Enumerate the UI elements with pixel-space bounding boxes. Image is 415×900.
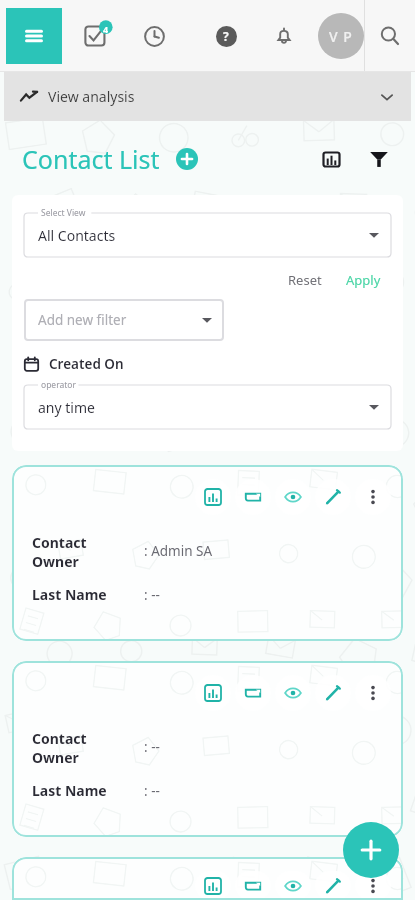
staticText: Contact List [22, 142, 160, 176]
button[interactable]: Filter [359, 139, 399, 179]
button[interactable]: Recent [132, 14, 176, 58]
staticText: Reset [288, 271, 322, 289]
staticText: : -- [144, 782, 160, 800]
button[interactable]: Add [172, 144, 202, 174]
button[interactable]: Search [365, 0, 415, 72]
staticText: : Admin SA [144, 542, 213, 560]
button[interactable]: Analytics [12, 661, 403, 837]
button[interactable]: Chart view [311, 139, 351, 179]
button[interactable]: Notes [235, 675, 271, 711]
button[interactable]: View analysis [4, 72, 411, 121]
button[interactable]: Notes [235, 479, 271, 515]
button[interactable]: Menu [6, 8, 62, 64]
staticText: Select View [41, 207, 86, 219]
staticText: Contact Owner [32, 729, 132, 767]
button[interactable]: More options [355, 675, 391, 711]
button[interactable]: Apply [340, 267, 387, 293]
button[interactable]: Notifications [262, 14, 306, 58]
staticText: : -- [144, 586, 160, 604]
button[interactable]: Add new filter [24, 299, 224, 341]
button[interactable]: Analytics [195, 675, 231, 711]
staticText: View analysis [48, 87, 135, 106]
button[interactable]: Reset [282, 267, 328, 293]
button[interactable]: Edit [315, 675, 351, 711]
button[interactable]: Notes [235, 871, 271, 900]
button[interactable]: Edit [315, 479, 351, 515]
button[interactable]: Tasks [76, 13, 122, 59]
button[interactable]: V P [318, 13, 364, 59]
staticText: Add new filter [38, 311, 127, 329]
staticText: V P [329, 27, 353, 46]
button[interactable]: View [275, 675, 311, 711]
staticText: 4 [103, 23, 109, 35]
button[interactable]: Analytics [12, 465, 403, 641]
staticText: : -- [144, 738, 160, 756]
button[interactable]: Edit [315, 871, 351, 900]
staticText: Created On [49, 355, 124, 373]
button[interactable]: Analytics [195, 479, 231, 515]
staticText: Last Name [32, 781, 107, 800]
button[interactable]: More options [355, 479, 391, 515]
button[interactable]: View [275, 479, 311, 515]
button[interactable]: Analytics [12, 857, 403, 900]
staticText: Last Name [32, 585, 107, 604]
staticText: Contact Owner [32, 533, 132, 571]
staticText: any time [38, 398, 95, 417]
button[interactable]: Analytics [195, 871, 231, 900]
staticText: ? [223, 28, 229, 44]
button[interactable]: Help [204, 14, 248, 58]
staticText: All Contacts [38, 226, 116, 245]
button[interactable]: Add contact [343, 822, 399, 878]
staticText: operator [41, 379, 76, 391]
button[interactable]: More options [355, 871, 391, 900]
button[interactable]: View [275, 871, 311, 900]
staticText: Apply [346, 271, 381, 289]
